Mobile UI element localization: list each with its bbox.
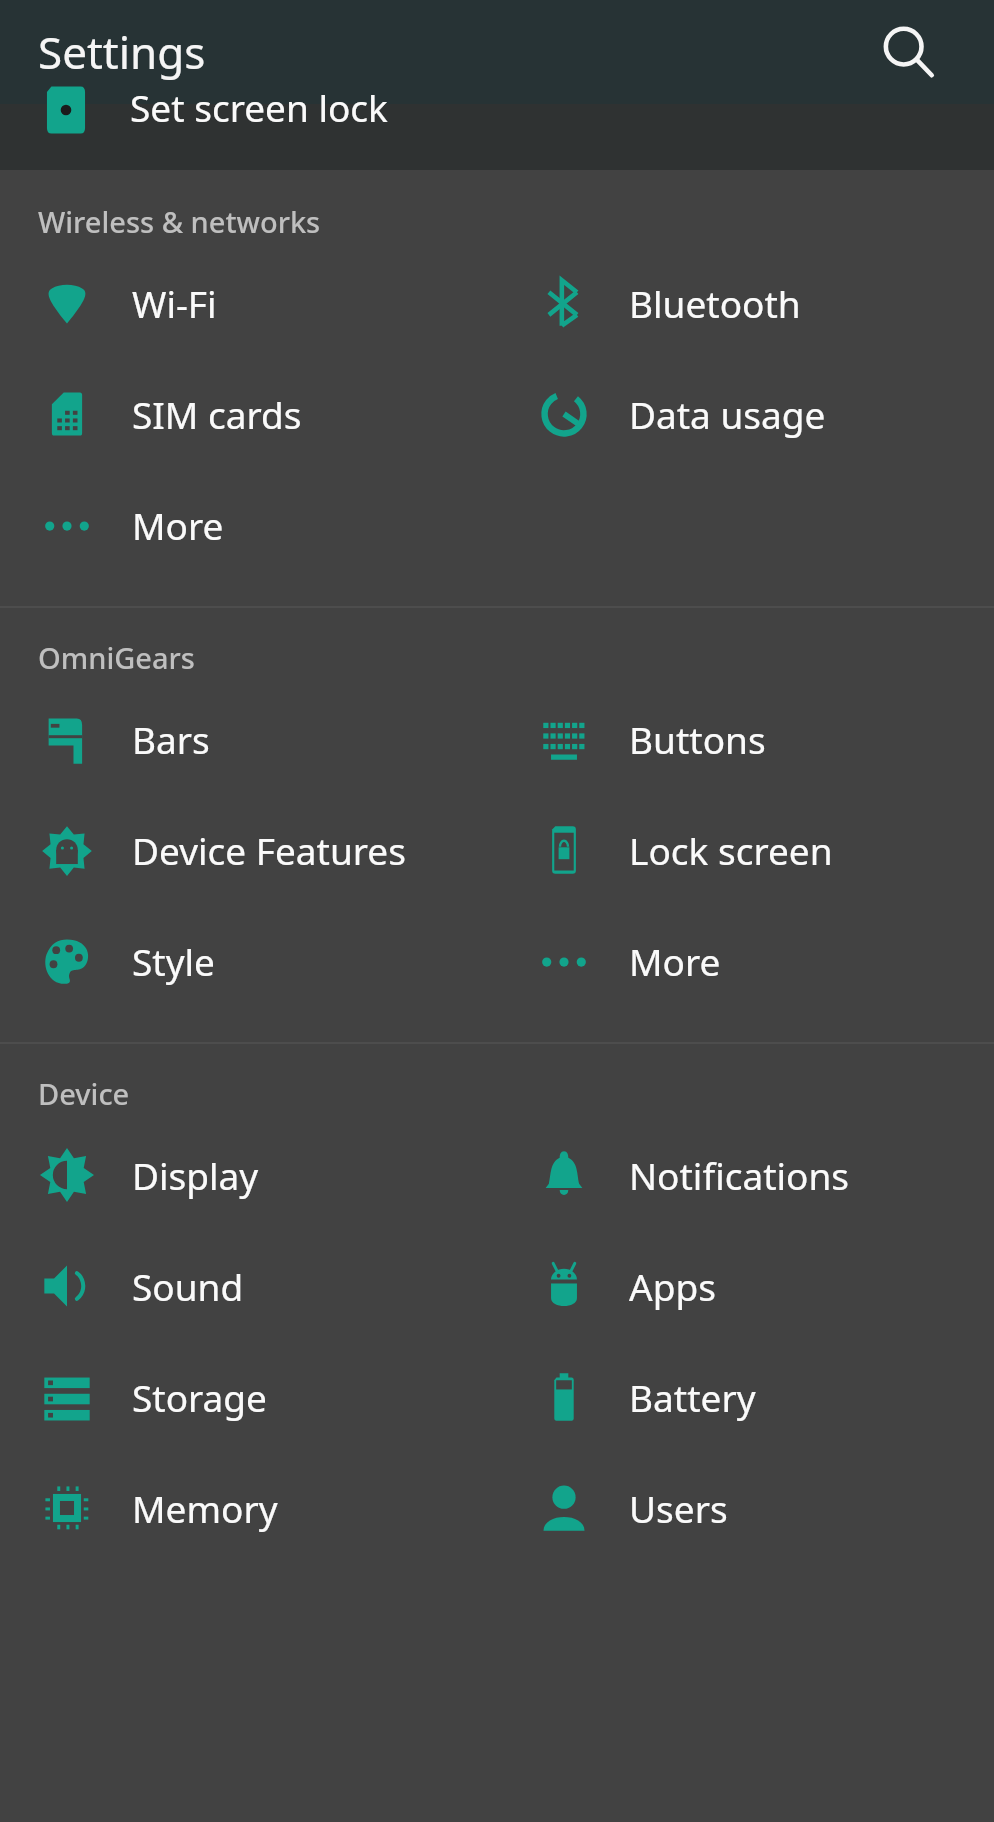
staticText: Wireless & networks [38,202,321,241]
staticText: Battery [629,1372,756,1422]
button[interactable]: More [0,469,497,580]
button[interactable]: Lock screen [497,794,994,905]
staticText: Wi-Fi [132,278,217,328]
staticText: More [629,936,721,986]
button[interactable]: Battery [497,1341,994,1452]
staticText: Style [132,936,215,986]
button[interactable]: Buttons [497,683,994,794]
staticText: Data usage [629,389,826,439]
staticText: Notifications [629,1150,850,1200]
button[interactable]: Users [497,1452,994,1563]
staticText: Bluetooth [629,278,801,328]
button[interactable]: SIM cards [0,358,497,469]
staticText: Display [132,1150,259,1200]
button[interactable]: Bars [0,683,497,794]
button[interactable]: Storage [0,1341,497,1452]
button[interactable]: Search [862,6,954,98]
button[interactable]: More [497,905,994,1016]
staticText: Sound [132,1261,244,1311]
staticText: Device Features [132,825,406,875]
staticText: SIM cards [132,389,302,439]
staticText: Memory [132,1483,278,1533]
button[interactable]: Style [0,905,497,1016]
staticText: Settings [38,22,206,82]
button[interactable]: Sound [0,1230,497,1341]
button[interactable]: Wi-Fi [0,247,497,358]
staticText: Users [629,1483,728,1533]
button[interactable]: Device Features [0,794,497,905]
staticText: OmniGears [38,638,195,677]
staticText: Lock screen [629,825,833,875]
button[interactable]: Data usage [497,358,994,469]
staticText: Set screen lock [130,82,388,132]
button[interactable]: Memory [0,1452,497,1563]
button[interactable]: Bluetooth [497,247,994,358]
staticText: Storage [132,1372,267,1422]
staticText: Apps [629,1261,716,1311]
staticText: Buttons [629,714,766,764]
staticText: Device [38,1074,130,1113]
button[interactable]: Notifications [497,1119,994,1230]
staticText: More [132,500,224,550]
staticText: Bars [132,714,210,764]
button[interactable]: Display [0,1119,497,1230]
button[interactable]: Apps [497,1230,994,1341]
button[interactable]: Set screen lock [0,104,994,170]
